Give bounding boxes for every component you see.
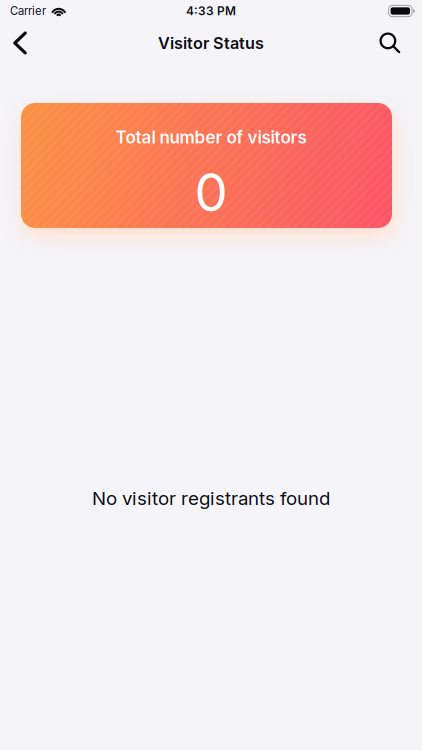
button[interactable]: Back [0, 21, 40, 65]
staticText: Visitor Status [158, 33, 264, 53]
staticText: Total number of visitors [115, 127, 306, 148]
button[interactable]: Search [368, 21, 412, 65]
staticText: Carrier [10, 4, 46, 18]
staticText: 4:33 PM [186, 4, 236, 18]
staticText: 0 [194, 160, 227, 224]
staticText: No visitor registrants found [92, 487, 330, 510]
